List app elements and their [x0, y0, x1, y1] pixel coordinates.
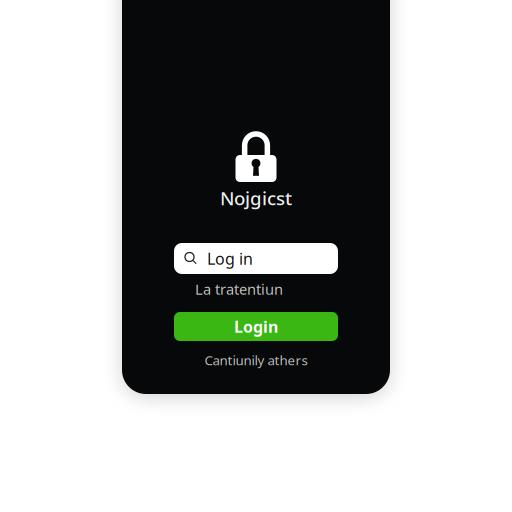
button[interactable]: Log in field: [174, 243, 338, 274]
staticText: Login: [234, 316, 278, 337]
staticText: Cantiunily athers: [204, 351, 307, 369]
staticText: Nojgicst: [220, 186, 292, 210]
staticText: La tratentiun: [195, 279, 283, 299]
button[interactable]: Login: [174, 312, 338, 341]
staticText: Log in: [207, 248, 253, 269]
